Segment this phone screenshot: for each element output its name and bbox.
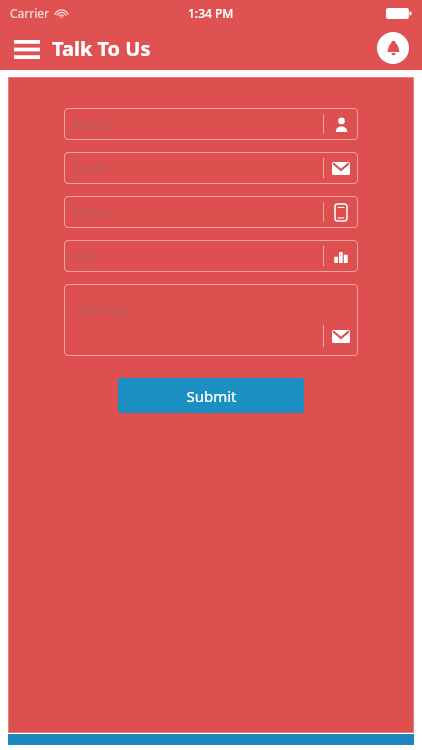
staticText: Message [77, 300, 132, 318]
button[interactable]: Email [64, 152, 358, 184]
button[interactable]: Name [64, 108, 358, 140]
button[interactable]: Menu [12, 36, 42, 62]
staticText: Mobile [73, 203, 323, 221]
button[interactable]: Submit [118, 378, 304, 413]
staticText: City [73, 247, 323, 265]
staticText: Talk To Us [52, 35, 151, 62]
staticText: 1:34 PM [188, 5, 234, 21]
staticText: Submit [186, 386, 237, 406]
staticText: Email [73, 159, 323, 177]
button[interactable]: Mobile [64, 196, 358, 228]
button[interactable]: Message [64, 284, 358, 356]
button[interactable]: City [64, 240, 358, 272]
staticText: Carrier [10, 5, 50, 21]
staticText: Name [73, 115, 323, 133]
button[interactable]: Notifications [377, 32, 409, 64]
